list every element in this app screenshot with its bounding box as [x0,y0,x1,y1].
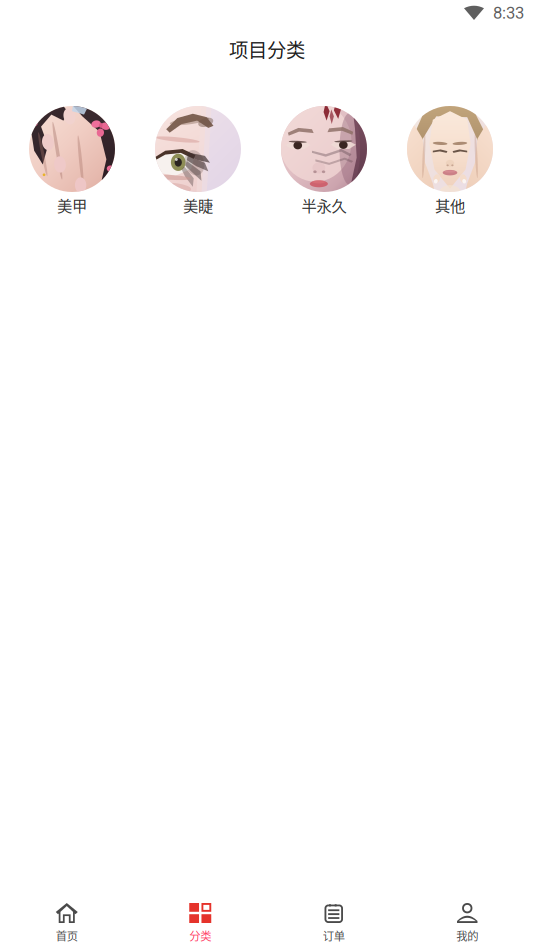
staticText: 美甲 [57,194,87,216]
staticText: 订单 [323,927,345,944]
button[interactable]: 订单 [267,897,400,946]
button[interactable]: 分类 [133,897,267,946]
staticText: 美睫 [183,194,213,216]
button[interactable]: 美睫 [135,106,261,218]
staticText: 8:33 [493,3,524,23]
button[interactable]: 半永久 [261,106,387,218]
button[interactable]: 其他 [387,106,513,218]
button[interactable]: 美甲 [9,106,135,218]
staticText: 分类 [189,927,211,944]
staticText: 我的 [456,927,478,944]
button[interactable]: 我的 [400,897,534,946]
staticText: 项目分类 [229,35,305,63]
staticText: 首页 [56,927,78,944]
staticText: 半永久 [301,194,346,216]
staticText: 其他 [435,194,465,216]
button[interactable]: 首页 [0,897,133,946]
